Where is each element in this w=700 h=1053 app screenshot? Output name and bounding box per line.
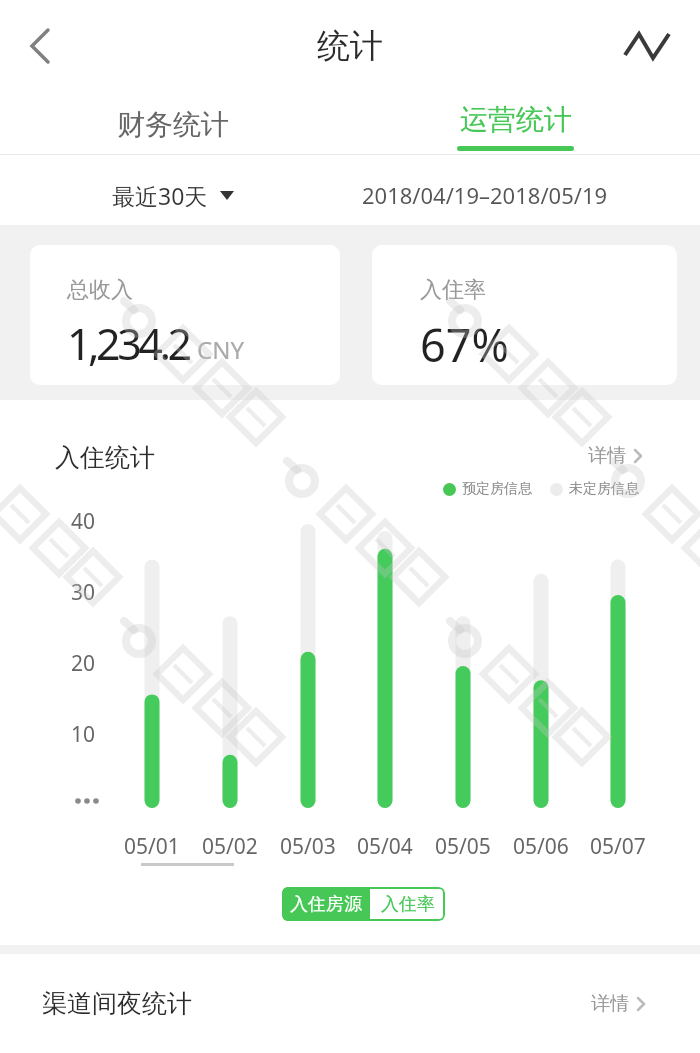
staticText: 05/06 — [513, 832, 569, 861]
staticText: 40 — [70, 507, 95, 536]
staticText: 详情 — [591, 992, 629, 1016]
staticText: 入住统计 — [55, 442, 155, 473]
staticText: 05/07 — [590, 832, 646, 861]
staticText: 10 — [70, 720, 95, 749]
staticText: 05/05 — [435, 832, 491, 861]
staticText: 统计 — [317, 25, 383, 67]
button[interactable] — [18, 24, 62, 68]
staticText: 详情 — [588, 444, 626, 468]
staticText: 渠道间夜统计 — [42, 988, 192, 1019]
button[interactable]: 财务统计 — [100, 92, 245, 154]
staticText: 入住房源 — [290, 893, 362, 916]
button[interactable]: 入住房源 — [282, 887, 370, 921]
staticText: 财务统计 — [117, 107, 229, 142]
staticText: 05/04 — [357, 832, 413, 861]
staticText: 总收入 — [67, 276, 133, 304]
button[interactable] — [621, 20, 673, 72]
staticText: 05/03 — [280, 832, 336, 861]
staticText: 入住率 — [381, 893, 435, 916]
staticText: 预定房信息 — [462, 480, 532, 498]
button[interactable]: 详情 — [588, 444, 642, 468]
staticText: 05/01 — [124, 832, 180, 861]
button[interactable]: 最近30天 — [112, 180, 234, 211]
staticText: 30 — [70, 578, 95, 607]
staticText: 运营统计 — [460, 102, 572, 137]
staticText: 2018/04/19–2018/05/19 — [362, 180, 608, 210]
staticText: CNY — [197, 333, 244, 366]
button[interactable]: 运营统计 — [443, 92, 588, 154]
staticText: 1,234.2 — [67, 314, 189, 373]
staticText: 05/02 — [202, 832, 258, 861]
staticText: 67% — [420, 314, 509, 375]
button[interactable]: 详情 — [591, 992, 645, 1016]
button[interactable]: 入住率 — [370, 887, 445, 921]
button[interactable]: 总收入 — [30, 245, 340, 385]
staticText: 未定房信息 — [569, 480, 639, 498]
button[interactable]: 入住率 — [372, 245, 677, 385]
staticText: 最近30天 — [112, 180, 208, 211]
staticText: 入住率 — [420, 276, 486, 304]
staticText: 20 — [70, 649, 95, 678]
